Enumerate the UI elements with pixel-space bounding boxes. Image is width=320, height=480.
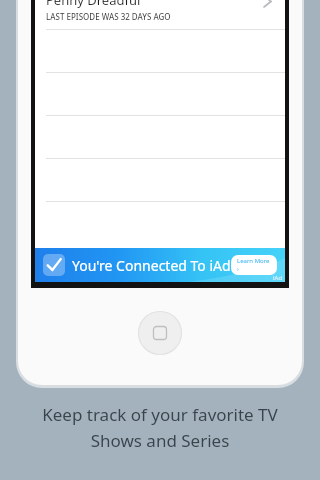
button[interactable]: Home xyxy=(138,311,182,355)
staticText: LAST EPISODE WAS 32 DAYS AGO xyxy=(46,11,171,21)
button[interactable] xyxy=(35,73,285,116)
staticText: iAd xyxy=(273,274,283,282)
staticText: Keep track of your favorite TV Shows and… xyxy=(14,403,306,452)
button[interactable] xyxy=(35,30,285,73)
button[interactable] xyxy=(35,116,285,159)
button[interactable] xyxy=(35,159,285,202)
button[interactable]: You're Connected To iAd xyxy=(35,248,285,282)
button[interactable]: Penny Dreadful xyxy=(35,0,285,30)
staticText: You're Connected To iAd xyxy=(72,256,231,275)
staticText: Penny Dreadful xyxy=(46,0,141,9)
staticText: Learn More › xyxy=(237,257,271,273)
button[interactable]: Learn More › xyxy=(231,255,277,275)
